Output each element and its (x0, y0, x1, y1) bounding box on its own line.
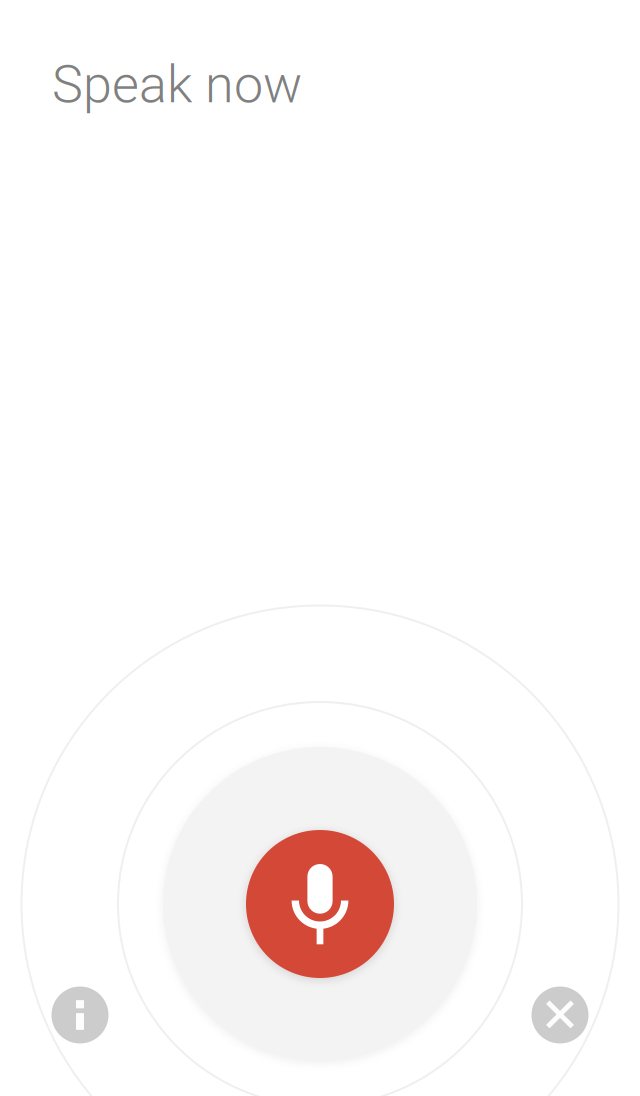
button[interactable]: Close (531, 986, 588, 1043)
button[interactable]: Info (51, 986, 108, 1043)
button[interactable]: Microphone (246, 830, 394, 978)
staticText: Speak now (52, 54, 302, 115)
